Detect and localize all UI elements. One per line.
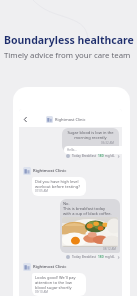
- staticText: Today Breakfast: [72, 154, 96, 158]
- staticText: 180: [98, 255, 104, 259]
- staticText: Today Breakfast: [72, 255, 96, 259]
- staticText: 08:12 AM: [103, 247, 117, 251]
- button[interactable]: Rightmost Clinic: [23, 167, 67, 175]
- button[interactable]: Rightmost Clinic: [23, 263, 67, 271]
- staticText: mg/dL: [104, 255, 115, 259]
- button[interactable]: Sugar blood is low in the morning recent…: [62, 128, 119, 152]
- button[interactable]: Looks good! We'll pay attention to the l…: [32, 273, 86, 296]
- button[interactable]: Did you have high level workout before t…: [32, 177, 86, 196]
- button[interactable]: Today Breakfast: [66, 255, 121, 259]
- staticText: 180: [98, 154, 104, 158]
- button[interactable]: Hello...: [64, 146, 122, 154]
- staticText: Looks good! We'll pay attention to the l…: [35, 275, 83, 290]
- staticText: 09:10 AM: [35, 290, 49, 294]
- staticText: Sugar blood is low in the morning recent…: [66, 130, 115, 140]
- button[interactable]: Back: [19, 113, 32, 126]
- button[interactable]: No. This is breakfast today with a cup o…: [60, 199, 120, 253]
- staticText: 06:32 AM: [101, 141, 115, 145]
- staticText: No. This is breakfast today with a cup o…: [63, 201, 112, 216]
- staticText: Rightmost Clinic: [33, 264, 67, 270]
- button[interactable]: Today Breakfast: [66, 154, 121, 158]
- staticText: Did you have high level workout before t…: [35, 179, 83, 189]
- staticText: 07:05 AM: [35, 189, 49, 193]
- staticText: Hello...: [67, 148, 77, 152]
- staticText: Rightmost Clinic: [55, 117, 86, 122]
- staticText: Rightmost Clinic: [33, 168, 67, 174]
- staticText: Timely advice from your care team: [4, 50, 131, 61]
- staticText: mg/dL: [104, 154, 115, 158]
- staticText: Boundaryless healthcare: [4, 33, 134, 47]
